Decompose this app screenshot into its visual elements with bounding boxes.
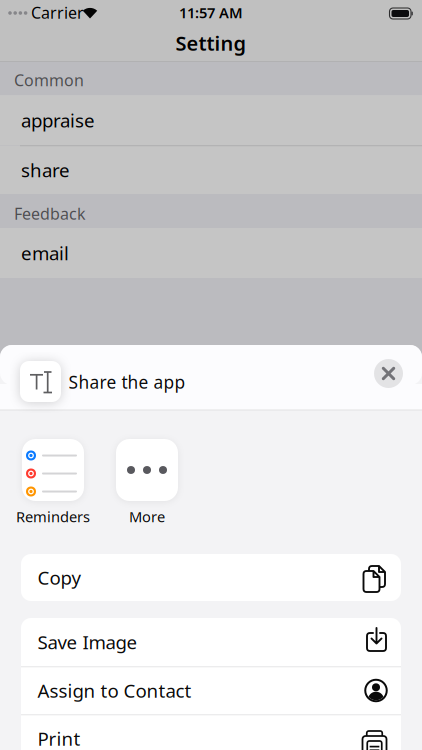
staticText: 11:57 AM bbox=[179, 3, 243, 22]
staticText: Copy bbox=[37, 565, 81, 590]
button[interactable]: Assign to Contact bbox=[21, 667, 401, 714]
button[interactable]: Close bbox=[374, 359, 403, 388]
staticText: Carrier bbox=[31, 2, 84, 23]
staticText: Share the app bbox=[68, 370, 185, 393]
button[interactable]: Save Image bbox=[21, 618, 401, 665]
button[interactable]: Copy bbox=[21, 554, 401, 601]
staticText: Common bbox=[14, 69, 84, 91]
staticText: Assign to Contact bbox=[37, 678, 191, 703]
button[interactable]: More bbox=[102, 439, 192, 524]
staticText: More bbox=[129, 507, 165, 526]
staticText: share bbox=[21, 158, 70, 182]
staticText: Reminders bbox=[16, 507, 90, 526]
button[interactable]: appraise bbox=[0, 95, 422, 145]
staticText: email bbox=[21, 241, 69, 265]
button[interactable]: Reminders bbox=[8, 439, 98, 524]
button[interactable]: share bbox=[0, 146, 422, 194]
staticText: Setting bbox=[175, 30, 246, 56]
button[interactable]: email bbox=[0, 228, 422, 278]
staticText: Print bbox=[37, 726, 80, 750]
staticText: Save Image bbox=[37, 630, 137, 654]
button[interactable]: Print bbox=[21, 715, 401, 750]
staticText: Feedback bbox=[14, 203, 86, 224]
staticText: appraise bbox=[21, 108, 95, 133]
